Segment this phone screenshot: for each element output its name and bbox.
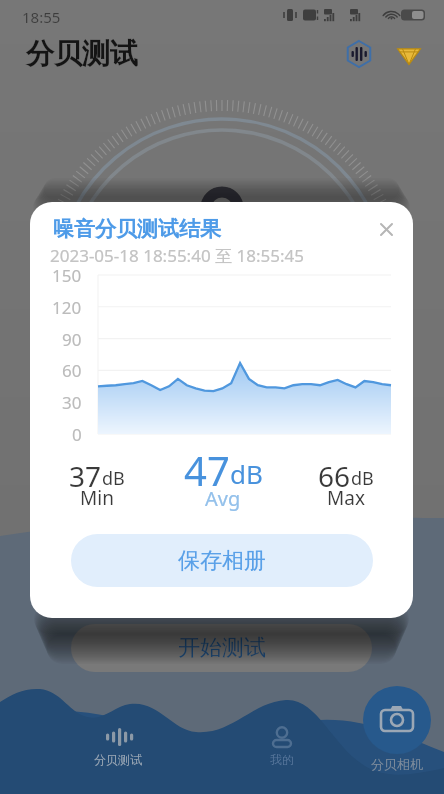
staticText: 保存相册 — [178, 547, 266, 575]
button[interactable]: 我的 — [242, 726, 322, 767]
staticText: dB — [351, 466, 374, 491]
staticText: 37 — [69, 457, 102, 495]
staticText: 分贝测试 — [94, 752, 142, 767]
staticText: Min — [80, 485, 114, 511]
staticText: 我的 — [270, 752, 294, 767]
staticText: 150 — [52, 264, 82, 286]
staticText: Avg — [205, 485, 241, 512]
staticText: 0 — [72, 423, 82, 445]
button[interactable]: 保存相册 — [71, 534, 373, 587]
staticText: 47 — [184, 443, 230, 497]
button[interactable]: Decibel camera — [360, 686, 434, 772]
staticText: 分贝相机 — [371, 756, 423, 772]
staticText: 噪音分贝测试结果 — [53, 216, 221, 242]
button[interactable]: 开始测试 — [71, 624, 372, 672]
staticText: Max — [327, 485, 365, 511]
staticText: 90 — [62, 328, 82, 350]
button[interactable]: Premium — [392, 37, 426, 71]
staticText: 30 — [62, 391, 82, 413]
button[interactable]: Close — [371, 214, 401, 244]
staticText: dB — [102, 466, 125, 491]
staticText: 18:55 — [22, 7, 61, 27]
button[interactable]: Decibel meter — [342, 37, 376, 71]
staticText: 2023-05-18 18:55:40 至 18:55:45 — [50, 244, 304, 267]
staticText: 120 — [52, 296, 82, 318]
staticText: 开始测试 — [178, 634, 266, 662]
staticText: 分贝测试 — [26, 36, 138, 71]
button[interactable]: 分贝测试 — [78, 726, 158, 767]
staticText: 60 — [62, 359, 82, 381]
staticText: 66 — [318, 457, 351, 495]
staticText: dB — [230, 456, 263, 491]
